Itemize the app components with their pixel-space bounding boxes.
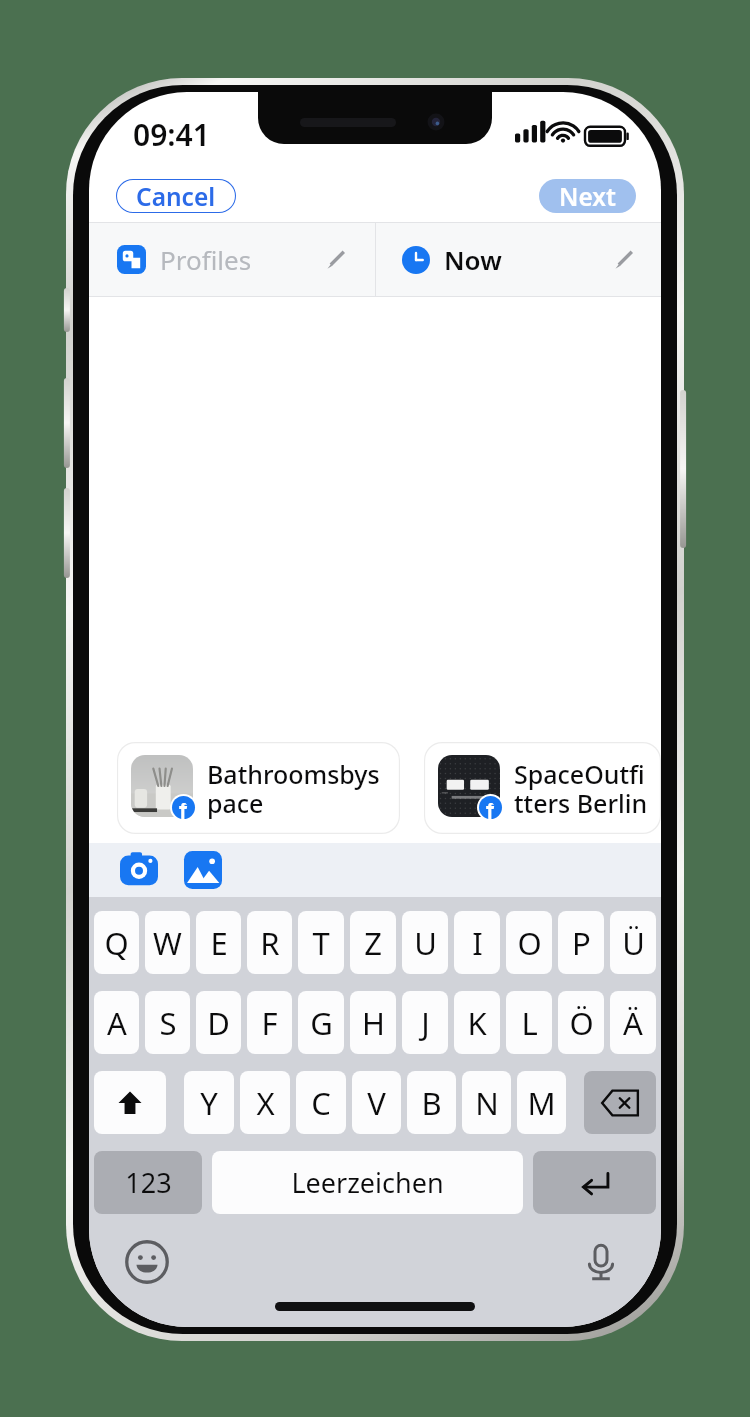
staticText: Ü [622,922,645,964]
staticText: V [367,1082,386,1124]
staticText: K [467,1002,487,1044]
button[interactable]: Emoji [125,1240,169,1284]
staticText: Z [364,922,382,964]
button[interactable]: W [145,911,190,974]
staticText: O [517,922,542,964]
other: Edit schedule [611,247,637,273]
staticText: Cancel [136,180,216,213]
staticText: Leerzeichen [291,1164,444,1201]
button[interactable]: X [240,1071,290,1134]
other: Edit profiles [323,247,349,273]
button[interactable]: I [454,911,500,974]
staticText: Now [444,242,502,277]
button[interactable]: R [247,911,292,974]
staticText: Profiles [160,242,252,277]
staticText: I [472,922,483,964]
button[interactable]: Next [539,179,636,213]
button[interactable]: L [506,991,552,1054]
button[interactable]: J [402,991,448,1054]
button[interactable]: H [350,991,396,1054]
staticText: M [527,1082,556,1124]
button[interactable]: P [558,911,604,974]
staticText: G [310,1002,333,1044]
staticText: J [421,1002,430,1044]
button[interactable]: Ö [558,991,604,1054]
button[interactable]: 123 [94,1151,202,1214]
button[interactable]: Return [533,1151,656,1214]
staticText: 09:41 [133,114,210,155]
button[interactable]: Camera [120,851,158,889]
staticText: Y [200,1082,218,1124]
button[interactable]: B [407,1071,456,1134]
staticText: SpaceOutfitters Berlin [514,757,651,820]
button[interactable]: Z [350,911,396,974]
staticText: X [256,1082,275,1124]
button[interactable]: O [506,911,552,974]
staticText: 123 [125,1164,172,1201]
staticText: Ä [623,1002,643,1044]
button[interactable]: Ä [610,991,656,1054]
button[interactable]: G [298,991,344,1054]
button[interactable]: Cancel [116,179,236,213]
button[interactable]: Ü [610,911,656,974]
staticText: S [159,1002,177,1044]
staticText: L [521,1002,538,1044]
staticText: U [414,922,437,964]
button[interactable]: Shift [94,1071,166,1134]
staticText: Q [104,922,129,964]
button[interactable]: D [196,991,241,1054]
button[interactable]: V [352,1071,401,1134]
staticText: C [311,1082,331,1124]
button[interactable]: F [247,991,292,1054]
button[interactable]: U [402,911,448,974]
staticText: Ö [569,1002,594,1044]
staticText: D [207,1002,230,1044]
staticText: E [210,922,228,964]
button[interactable]: Leerzeichen [212,1151,523,1214]
staticText: T [312,922,330,964]
button[interactable]: S [145,991,190,1054]
button[interactable]: Y [184,1071,234,1134]
staticText: F [261,1002,278,1044]
button[interactable]: Profiles [89,223,375,296]
button[interactable]: Backspace [584,1071,656,1134]
button[interactable]: T [298,911,344,974]
button[interactable]: C [296,1071,346,1134]
button[interactable]: Photo library [184,851,222,889]
staticText: A [107,1002,127,1044]
staticText: B [421,1082,442,1124]
staticText: Bathroomsbyspace [207,757,390,820]
button[interactable]: Bathroomsbyspace [117,742,400,834]
button[interactable]: E [196,911,241,974]
button[interactable]: SpaceOutfitters Berlin [424,742,661,834]
button[interactable]: K [454,991,500,1054]
staticText: N [475,1082,499,1124]
button[interactable]: N [462,1071,511,1134]
staticText: H [362,1002,385,1044]
button[interactable]: Now [376,223,661,296]
staticText: W [153,922,182,964]
button[interactable]: Dictation [581,1242,621,1282]
button[interactable]: A [94,991,139,1054]
staticText: Next [559,180,616,213]
staticText: P [572,922,591,964]
staticText: R [260,922,280,964]
button[interactable]: Q [94,911,139,974]
button[interactable]: M [517,1071,566,1134]
